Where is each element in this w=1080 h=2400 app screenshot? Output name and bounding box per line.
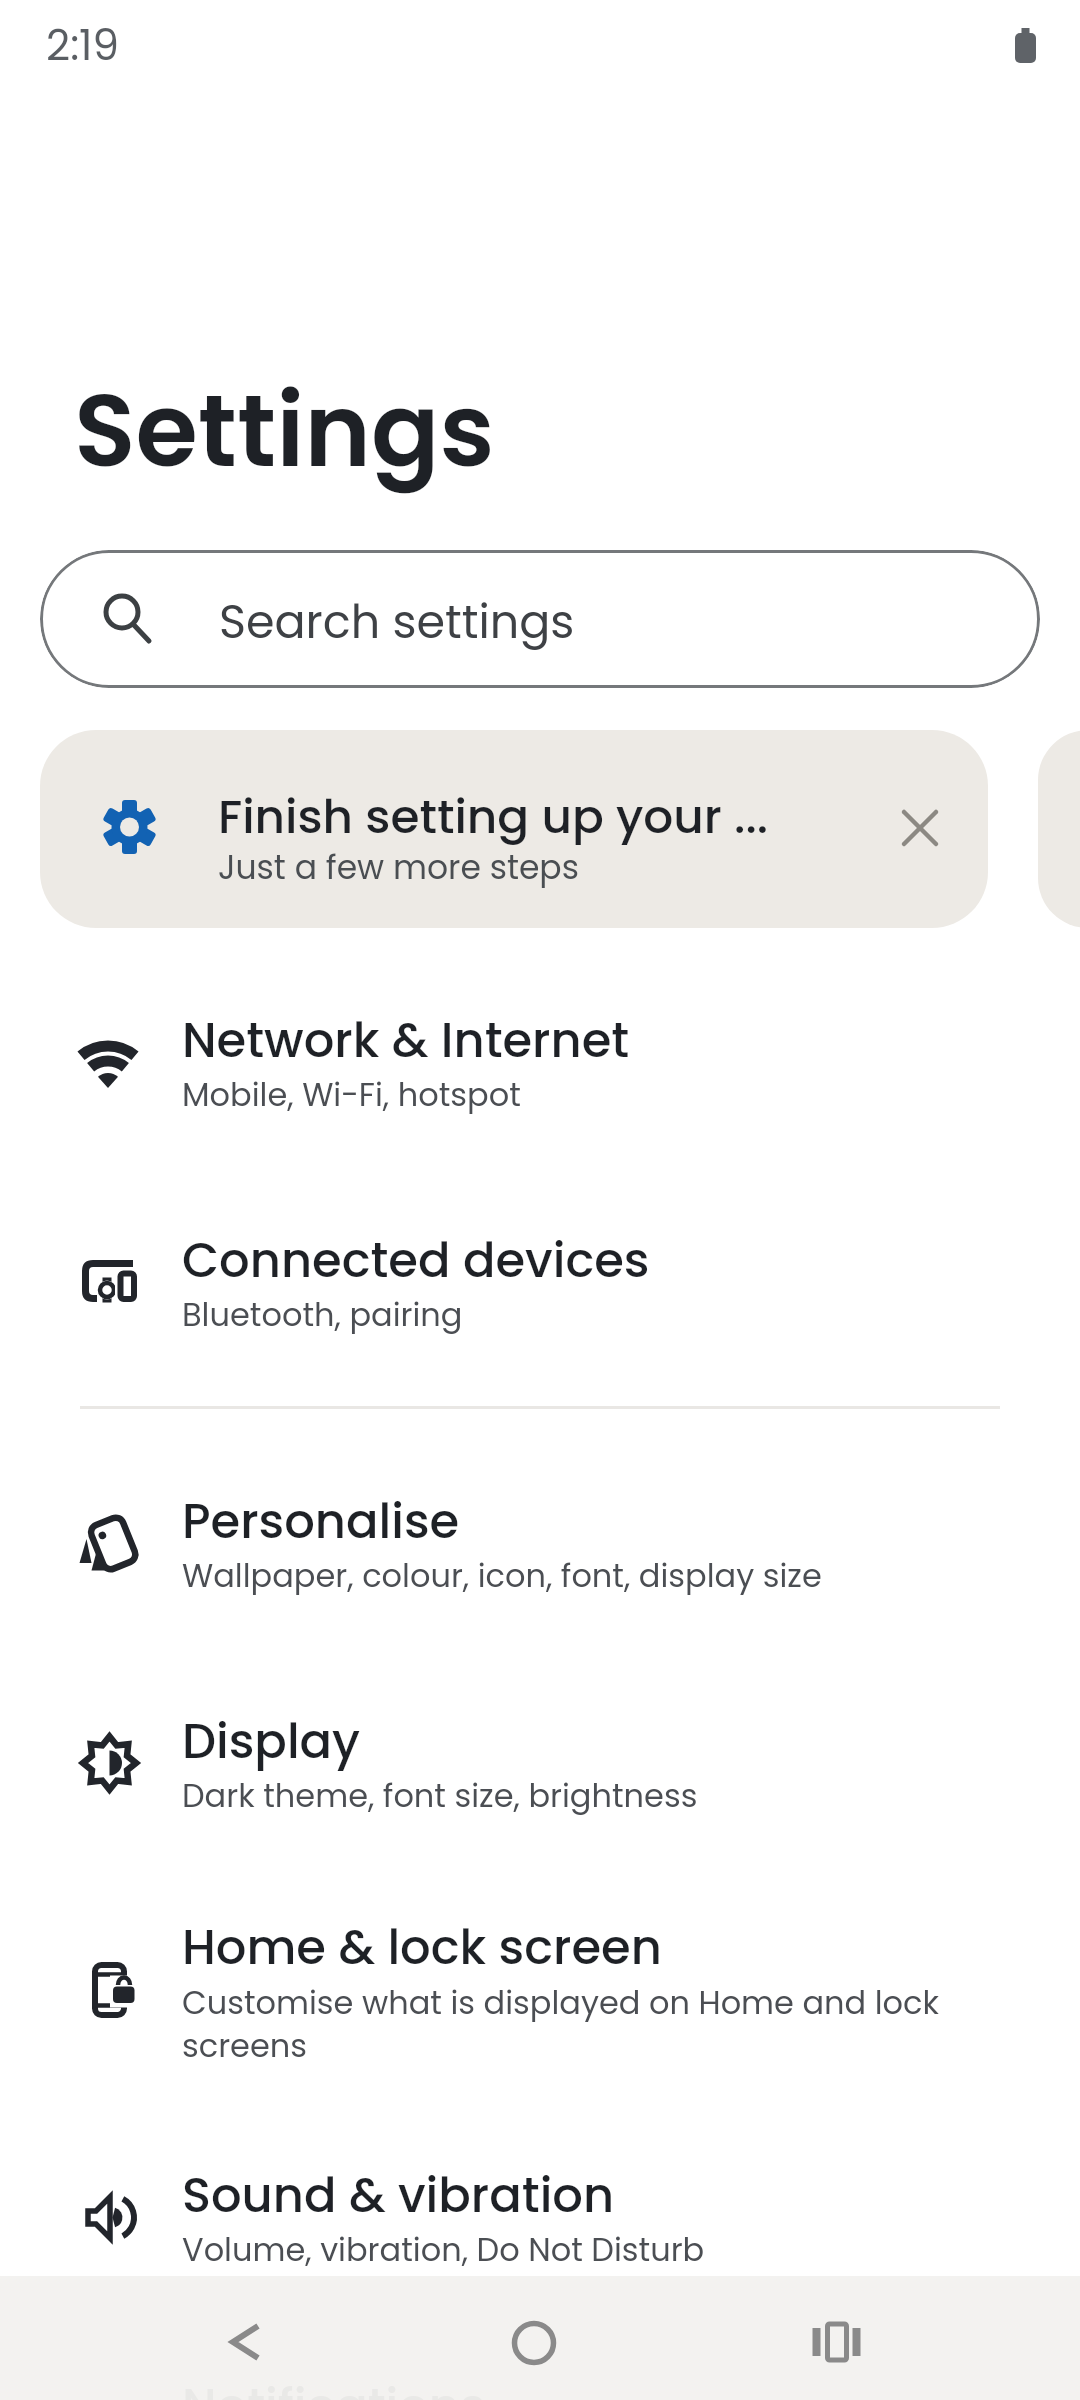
staticText: Notifications xyxy=(182,2373,486,2400)
staticText: Customise what is displayed on Home and … xyxy=(182,1980,982,2068)
button[interactable] xyxy=(40,550,1040,688)
staticText: Connected devices xyxy=(182,1227,650,1294)
staticText: Sound & vibration xyxy=(182,2162,615,2229)
button[interactable] xyxy=(0,1200,1080,1415)
staticText: Wallpaper, colour, icon, font, display s… xyxy=(182,1553,822,1598)
button[interactable] xyxy=(0,2140,1080,2340)
button[interactable] xyxy=(190,2290,290,2390)
staticText: Home & lock screen xyxy=(182,1914,662,1981)
button[interactable] xyxy=(0,1682,1080,1897)
staticText: Bluetooth, pairing xyxy=(182,1292,463,1337)
button[interactable] xyxy=(489,2290,589,2390)
button[interactable] xyxy=(1038,730,1080,928)
staticText: 2:19 xyxy=(46,16,119,75)
staticText: Display xyxy=(182,1708,361,1775)
staticText: Settings xyxy=(74,360,495,501)
staticText: Dark theme, font size, brightness xyxy=(182,1773,698,1818)
staticText: Personalise xyxy=(182,1488,460,1555)
staticText: Just a few more steps xyxy=(218,844,579,890)
button[interactable] xyxy=(0,1462,1080,1677)
button[interactable] xyxy=(0,1892,1080,2137)
button[interactable] xyxy=(788,2290,888,2390)
staticText: Mobile, Wi-Fi, hotspot xyxy=(182,1072,521,1117)
button[interactable] xyxy=(0,980,1080,1195)
staticText: Finish setting up your ... xyxy=(218,784,769,850)
staticText: Search settings xyxy=(219,590,575,654)
button[interactable] xyxy=(890,799,950,859)
button[interactable] xyxy=(40,730,988,928)
staticText: Volume, vibration, Do Not Disturb xyxy=(182,2227,705,2272)
staticText: Network & Internet xyxy=(182,1007,630,1074)
